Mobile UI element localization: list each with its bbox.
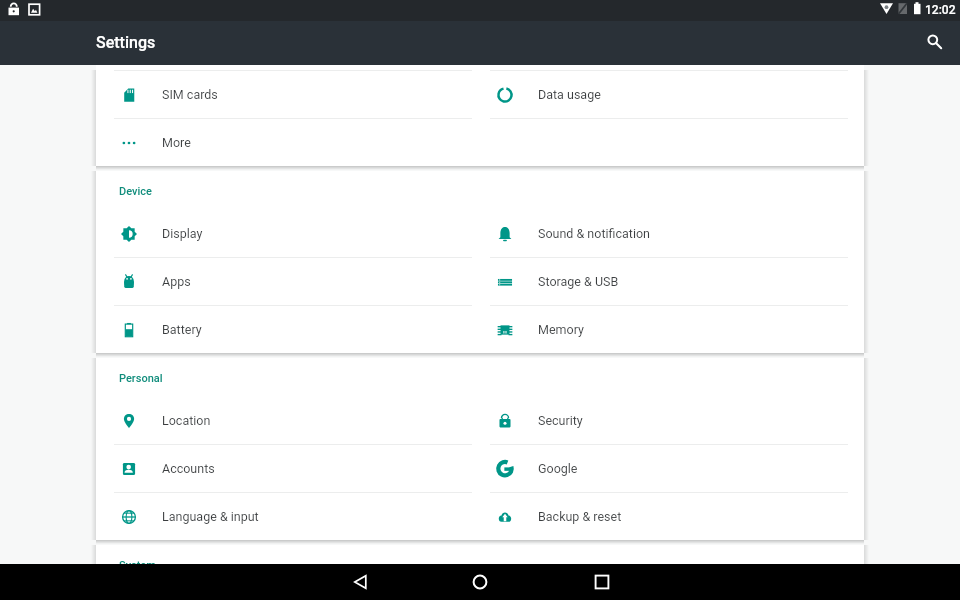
- button[interactable]: Accessibility: [490, 584, 848, 600]
- staticText: SIM cards: [162, 87, 218, 102]
- button[interactable]: Backup & reset: [490, 493, 848, 540]
- staticText: More: [162, 135, 191, 150]
- button[interactable]: Data usage: [490, 71, 848, 118]
- staticText: Accessibility: [538, 585, 608, 600]
- staticText: System: [119, 559, 156, 572]
- staticText: Display: [162, 226, 203, 241]
- staticText: Settings: [96, 33, 156, 52]
- button[interactable]: Google: [490, 445, 848, 492]
- staticText: Location: [162, 413, 211, 428]
- staticText: Accounts: [162, 461, 215, 476]
- staticText: Security: [538, 413, 583, 428]
- button[interactable]: Display: [114, 210, 472, 257]
- staticText: Personal: [119, 372, 163, 385]
- button[interactable]: Security: [490, 397, 848, 444]
- button[interactable]: Storage & USB: [490, 258, 848, 305]
- button[interactable]: Battery: [114, 306, 472, 353]
- button[interactable]: Memory: [490, 306, 848, 353]
- staticText: Backup & reset: [538, 509, 622, 524]
- staticText: 12:02: [925, 3, 956, 17]
- button[interactable]: Apps: [114, 258, 472, 305]
- staticText: Google: [538, 461, 578, 476]
- staticText: Storage & USB: [538, 274, 619, 289]
- button[interactable]: Location: [114, 397, 472, 444]
- button[interactable]: Search: [916, 25, 952, 61]
- button[interactable]: Language & input: [114, 493, 472, 540]
- button[interactable]: Date & time: [114, 584, 472, 600]
- button[interactable]: SIM cards: [114, 71, 472, 118]
- button[interactable]: Accounts: [114, 445, 472, 492]
- staticText: Memory: [538, 322, 584, 337]
- staticText: Battery: [162, 322, 202, 337]
- staticText: Sound & notification: [538, 226, 650, 241]
- staticText: Device: [119, 185, 152, 198]
- staticText: Language & input: [162, 509, 259, 524]
- staticText: Apps: [162, 274, 191, 289]
- staticText: Data usage: [538, 87, 601, 102]
- button[interactable]: Sound & notification: [490, 210, 848, 257]
- button[interactable]: Back: [300, 564, 420, 600]
- button[interactable]: More: [114, 119, 472, 166]
- button[interactable]: Recents: [540, 564, 660, 600]
- button[interactable]: Home: [420, 564, 540, 600]
